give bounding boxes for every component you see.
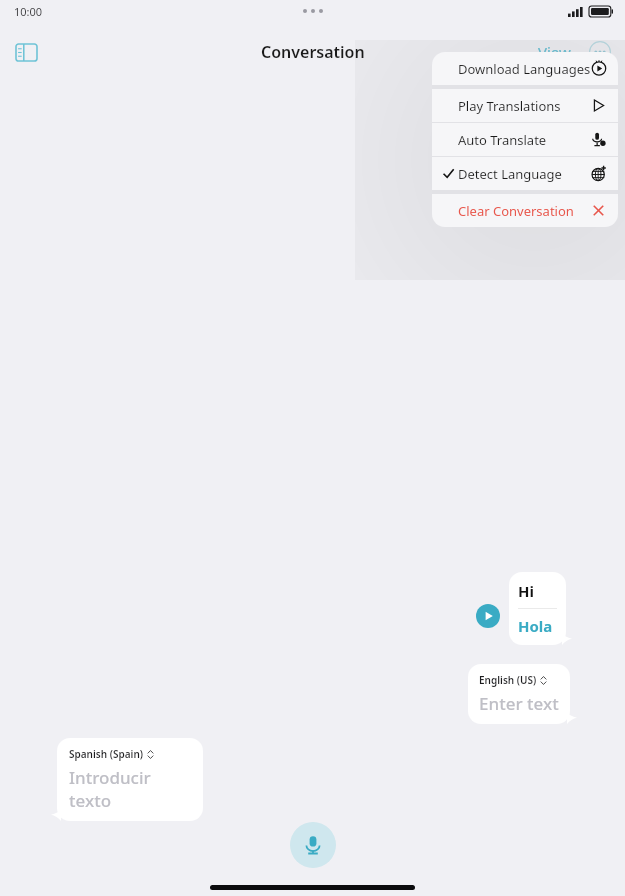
staticText: Introducir texto (69, 766, 191, 812)
button[interactable]: View (532, 36, 577, 68)
staticText: View (538, 42, 571, 62)
staticText: Detect Language (458, 165, 562, 183)
button[interactable]: Download Languages (432, 52, 618, 85)
button[interactable]: Hi (509, 572, 566, 645)
button[interactable]: Record voice (290, 822, 336, 868)
button[interactable]: Clear Conversation (432, 194, 618, 227)
staticText: Play Translations (458, 97, 561, 115)
staticText: Hi (518, 581, 534, 601)
button[interactable]: Toggle sidebar (8, 34, 44, 70)
button[interactable]: More options (585, 37, 615, 67)
staticText: English (US) (479, 673, 537, 687)
button[interactable]: Spanish (Spain) (57, 738, 203, 821)
staticText: Auto Translate (458, 131, 547, 149)
button[interactable]: Auto Translate (432, 123, 618, 156)
button[interactable]: Play translation (476, 604, 500, 628)
button[interactable]: English (US) (468, 664, 570, 724)
button[interactable]: Play Translations (432, 89, 618, 122)
staticText: Hola (518, 616, 553, 636)
staticText: Spanish (Spain) (69, 747, 144, 761)
staticText: 10:00 (14, 4, 43, 19)
button[interactable]: Detect Language (432, 157, 618, 190)
staticText: Enter text (479, 692, 559, 715)
staticText: Download Languages (458, 60, 591, 78)
staticText: Conversation (261, 41, 365, 63)
staticText: Clear Conversation (458, 202, 574, 220)
